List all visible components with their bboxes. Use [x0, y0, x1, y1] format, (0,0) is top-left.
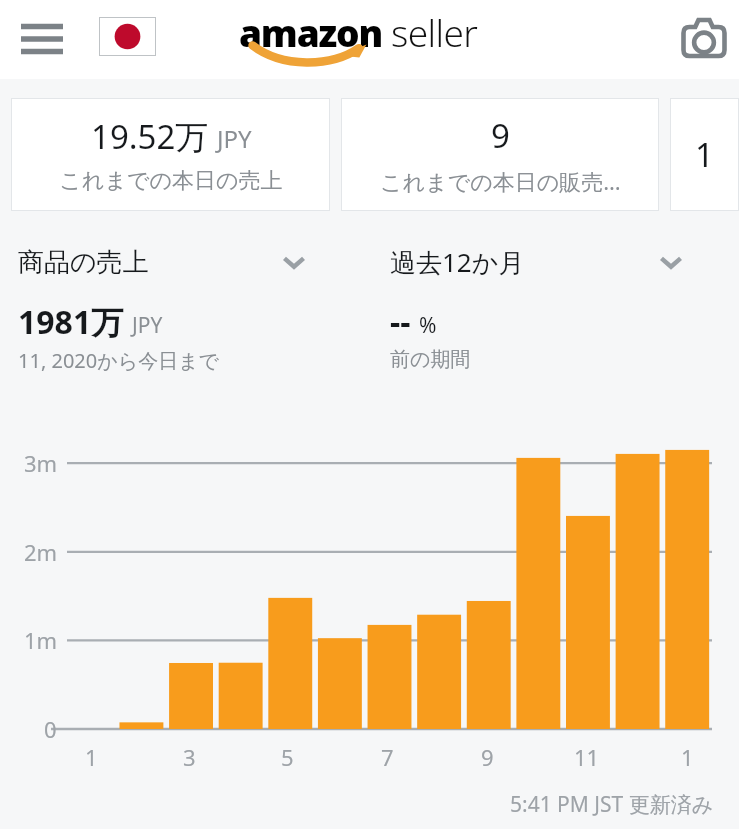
staticText: 1: [85, 742, 98, 772]
staticText: 7: [381, 742, 394, 772]
staticText: 9: [481, 742, 494, 772]
staticText: 2m: [24, 537, 58, 567]
staticText: %: [419, 311, 437, 340]
staticText: 11: [574, 742, 600, 772]
staticText: 3: [183, 742, 196, 772]
button[interactable]: 過去12か月: [390, 238, 685, 286]
button[interactable]: Marketplace Japan: [99, 17, 156, 56]
staticText: --: [390, 300, 411, 344]
staticText: 過去12か月: [390, 244, 525, 280]
button[interactable]: Menu: [16, 16, 68, 64]
staticText: 商品の売上: [18, 246, 149, 279]
staticText: 1: [695, 132, 714, 177]
staticText: JPY: [217, 122, 252, 155]
staticText: 5: [281, 742, 294, 772]
button[interactable]: 商品の売上: [18, 238, 318, 286]
staticText: 9: [491, 113, 510, 158]
staticText: seller: [391, 7, 478, 57]
staticText: 前の期間: [390, 347, 471, 372]
button[interactable]: 1: [670, 98, 739, 211]
staticText: JPY: [132, 311, 163, 340]
staticText: 3m: [24, 448, 58, 478]
staticText: amazon: [239, 7, 383, 57]
staticText: 1: [681, 742, 694, 772]
button[interactable]: 9: [341, 98, 659, 211]
staticText: 11, 2020から今日まで: [18, 347, 220, 374]
staticText: 1m: [24, 625, 58, 655]
staticText: 1981万: [18, 300, 124, 344]
staticText: 0: [44, 714, 57, 744]
staticText: これまでの本日の販売…: [380, 166, 621, 196]
button[interactable]: Scan product: [681, 17, 727, 59]
staticText: 5:41 PM JST 更新済み: [510, 790, 714, 819]
button[interactable]: 19.52万: [11, 98, 330, 211]
staticText: 19.52万: [91, 114, 209, 159]
staticText: これまでの本日の売上: [59, 167, 283, 195]
